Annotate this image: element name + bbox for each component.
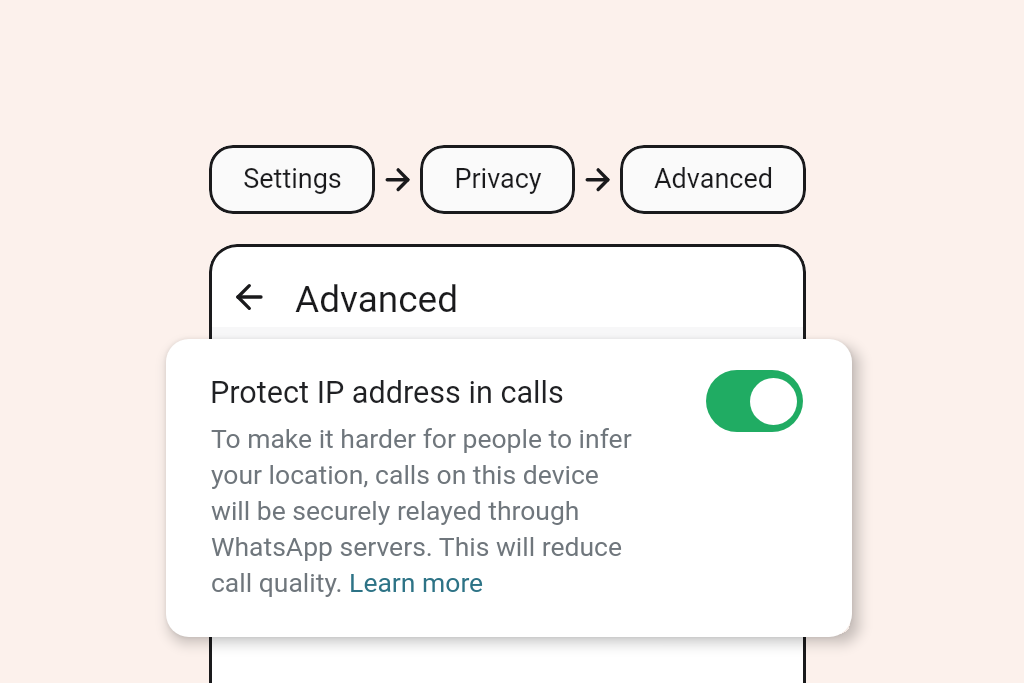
staticText: Protect IP address in calls [210, 375, 564, 411]
button[interactable]: Back [230, 270, 467, 329]
other: Back [238, 284, 263, 310]
staticText: Advanced [295, 278, 459, 321]
button[interactable]: Settings [209, 145, 375, 214]
staticText: Advanced [654, 163, 773, 195]
staticText: Privacy [454, 163, 542, 195]
button[interactable]: Advanced [620, 145, 806, 214]
button[interactable]: Protect IP address in calls toggle [706, 370, 803, 432]
button[interactable]: Privacy [420, 145, 575, 214]
staticText: To make it harder for people to infer yo… [211, 423, 632, 598]
staticText: Settings [243, 163, 342, 195]
